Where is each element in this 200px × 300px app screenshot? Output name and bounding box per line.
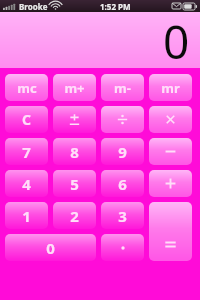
staticText: 0 bbox=[46, 238, 55, 258]
staticText: 4 bbox=[22, 174, 31, 194]
staticText: 9 bbox=[118, 142, 127, 162]
staticText: 0 bbox=[163, 10, 190, 66]
staticText: 2 bbox=[70, 206, 79, 226]
button[interactable]: m+ bbox=[53, 74, 96, 101]
button[interactable]: Subtract bbox=[149, 138, 192, 165]
staticText: m+ bbox=[64, 79, 85, 97]
button[interactable]: Equals bbox=[149, 202, 192, 261]
button[interactable]: m- bbox=[101, 74, 144, 101]
staticText: mc bbox=[17, 79, 37, 97]
staticText: 1 bbox=[22, 206, 31, 226]
button[interactable]: 4 bbox=[5, 170, 48, 197]
button[interactable]: 1 bbox=[5, 202, 48, 229]
button[interactable]: mc bbox=[5, 74, 48, 101]
staticText: 7 bbox=[22, 142, 31, 162]
button[interactable]: 0 bbox=[5, 234, 96, 261]
button[interactable]: 9 bbox=[101, 138, 144, 165]
button[interactable]: mr bbox=[149, 74, 192, 101]
button[interactable]: 5 bbox=[53, 170, 96, 197]
button[interactable]: 7 bbox=[5, 138, 48, 165]
button[interactable]: Multiply bbox=[149, 106, 192, 133]
button[interactable]: 2 bbox=[53, 202, 96, 229]
staticText: Brooke bbox=[19, 1, 48, 12]
staticText: 5 bbox=[70, 174, 79, 194]
button[interactable]: Decimal point bbox=[101, 234, 144, 261]
staticText: 8 bbox=[70, 142, 79, 162]
button[interactable]: Add bbox=[149, 170, 192, 197]
button[interactable]: 8 bbox=[53, 138, 96, 165]
staticText: mr bbox=[161, 79, 180, 97]
button[interactable]: 3 bbox=[101, 202, 144, 229]
button[interactable]: Divide bbox=[101, 106, 144, 133]
button[interactable]: Plus minus bbox=[53, 106, 96, 133]
staticText: 1:52 PM bbox=[100, 1, 131, 12]
staticText: 3 bbox=[118, 206, 127, 226]
staticText: m- bbox=[114, 79, 131, 97]
button[interactable]: C bbox=[5, 106, 48, 133]
staticText: 6 bbox=[118, 174, 127, 194]
staticText: C bbox=[22, 110, 31, 129]
button[interactable]: 6 bbox=[101, 170, 144, 197]
